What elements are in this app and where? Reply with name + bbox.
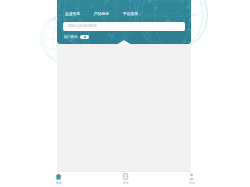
button[interactable]: 我的	[184, 172, 199, 186]
button[interactable]: 首页	[51, 172, 66, 186]
staticText: 企业信息	[65, 11, 81, 16]
button[interactable]: 产品服务	[93, 10, 111, 17]
staticText: 首页	[56, 181, 62, 185]
button[interactable]: 服务	[118, 172, 133, 186]
staticText: 请输入关键词搜索	[68, 24, 97, 29]
button[interactable]: 企业信息	[64, 10, 82, 17]
staticText: 服务	[123, 181, 129, 185]
staticText: 产品服务	[94, 11, 110, 16]
staticText: 热门搜索	[64, 35, 78, 39]
staticText: 平台推荐	[123, 11, 139, 16]
button[interactable]: 平台推荐	[122, 10, 140, 17]
button[interactable]: 请输入关键词搜索	[63, 22, 185, 31]
staticText: 我的	[189, 181, 195, 185]
button[interactable]: 热门搜索	[64, 35, 89, 39]
